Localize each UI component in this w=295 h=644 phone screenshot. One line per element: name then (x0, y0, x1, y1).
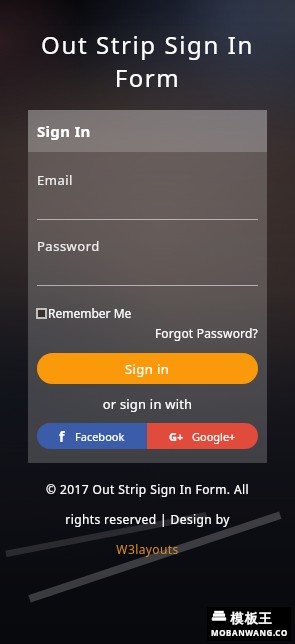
staticText: © 2017 Out Strip Sign In Form. All (0, 481, 295, 497)
staticText: or sign in with (37, 395, 258, 413)
button[interactable]: Email (37, 171, 258, 189)
staticText: Sign In (37, 121, 91, 141)
staticText: Email (37, 171, 73, 189)
staticText: G+ (169, 429, 184, 444)
staticText: Sign in (125, 360, 170, 378)
staticText: Remember Me (48, 305, 132, 321)
staticText: f (59, 427, 65, 446)
button[interactable]: W3layouts (0, 541, 295, 557)
button[interactable]: Remember Me (37, 305, 132, 321)
button[interactable]: Sign in (37, 353, 258, 384)
staticText: Facebook (75, 429, 125, 444)
staticText: rights reserved | Design by (0, 511, 295, 527)
staticText: MOBANWANG.COM (211, 627, 291, 641)
button[interactable]: f (37, 423, 147, 449)
button[interactable]: G+ (147, 423, 258, 449)
staticText: 模板王 (230, 610, 272, 626)
button[interactable]: Password (37, 237, 258, 255)
staticText: Password (37, 237, 100, 255)
staticText: Google+ (192, 429, 236, 444)
other: mobanwang.com watermark (207, 607, 291, 641)
button[interactable]: Forgot Password? (37, 325, 258, 341)
staticText: Out Strip Sign In Form (14, 28, 281, 94)
